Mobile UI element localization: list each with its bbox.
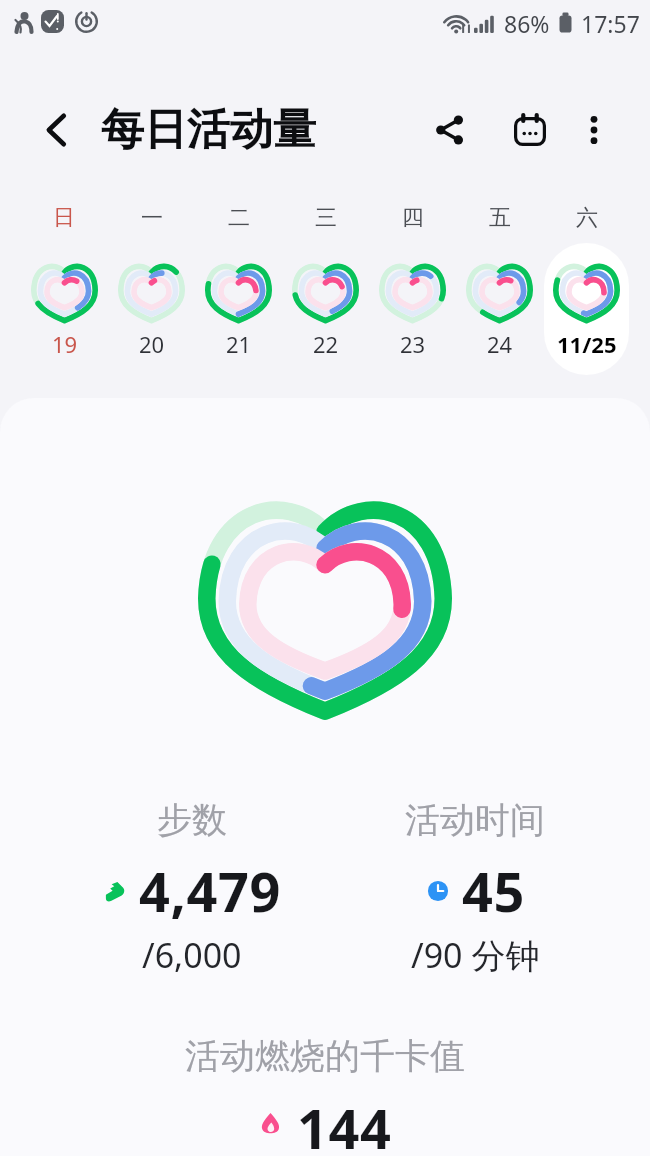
staticText: /6,000 — [142, 932, 242, 978]
staticText: 45 — [462, 854, 525, 928]
staticText: 19 — [52, 329, 78, 359]
button[interactable]: Share — [422, 102, 478, 158]
staticText: 22 — [313, 329, 339, 359]
staticText: 步数 — [157, 798, 227, 842]
staticText: 一 — [141, 204, 163, 232]
staticText: 活动时间 — [405, 798, 545, 842]
staticText: 每日活动量 — [101, 103, 316, 157]
staticText: 4,479 — [139, 854, 281, 928]
button[interactable]: 23 — [370, 243, 455, 375]
staticText: 21 — [226, 329, 252, 359]
button[interactable]: 22 — [283, 243, 368, 375]
button[interactable]: 21 — [196, 243, 281, 375]
button[interactable]: Back — [29, 102, 85, 158]
button[interactable]: 19 — [22, 243, 107, 375]
staticText: 86% — [504, 8, 550, 39]
staticText: /90 分钟 — [411, 932, 540, 978]
staticText: 24 — [487, 329, 513, 359]
staticText: 二 — [228, 204, 250, 232]
button[interactable]: Calendar — [502, 102, 558, 158]
button[interactable]: 20 — [109, 243, 194, 375]
staticText: 五 — [489, 204, 511, 232]
staticText: 四 — [402, 204, 424, 232]
staticText: 20 — [139, 329, 165, 359]
staticText: 活动燃烧的千卡值 — [185, 1034, 465, 1078]
staticText: 17:57 — [581, 8, 640, 39]
staticText: 144 — [297, 1091, 392, 1156]
button[interactable]: 11/25 — [544, 243, 629, 375]
staticText: 六 — [576, 204, 598, 232]
staticText: 23 — [400, 329, 426, 359]
staticText: 11/25 — [557, 329, 617, 359]
button[interactable]: 24 — [457, 243, 542, 375]
staticText: 三 — [315, 204, 337, 232]
button[interactable]: More options — [568, 104, 620, 156]
staticText: 日 — [53, 204, 75, 232]
